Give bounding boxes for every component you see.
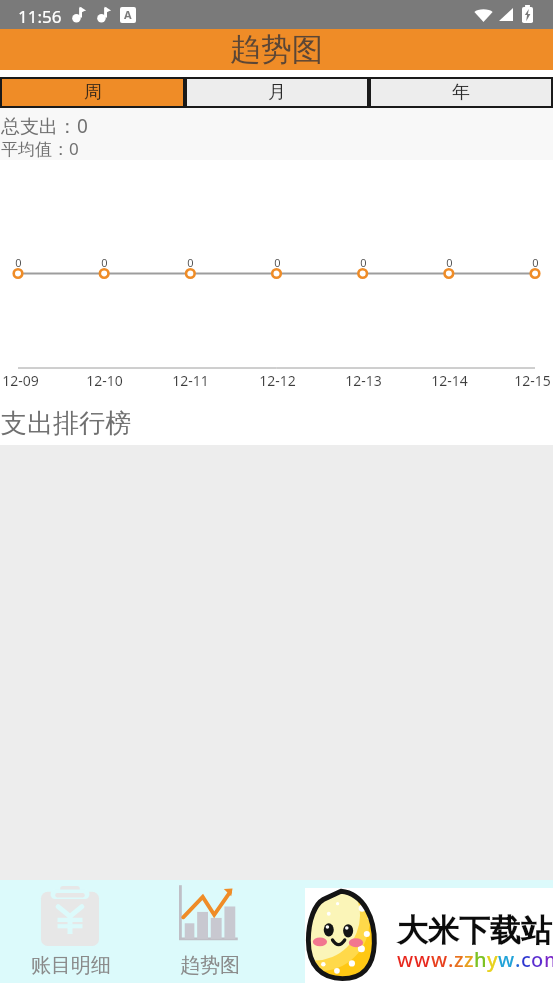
other: Battery [522,5,533,23]
staticText: 0 [446,255,453,270]
staticText: 12-10 [86,371,123,390]
staticText: w [431,946,448,973]
staticText: 平均值：0 [1,137,79,160]
staticText: . [448,946,454,973]
staticText: A [124,7,132,22]
button[interactable]: 周 [0,77,185,108]
other: 账目明细 [41,886,99,946]
button[interactable]: 年 [369,77,553,108]
staticText: c [521,946,531,973]
staticText: 总支出：0 [1,113,88,139]
staticText: 12-15 [514,371,551,390]
staticText: 支出排行榜 [1,407,131,440]
staticText: 0 [187,255,194,270]
other: WiFi [474,7,493,22]
staticText: 12-13 [345,371,382,390]
button[interactable]: 账目明细 [0,880,142,983]
staticText: 12-09 [2,371,39,390]
staticText: 0 [360,255,367,270]
staticText: m [544,946,553,973]
staticText: 趋势图 [230,30,323,69]
staticText: 12-12 [259,371,296,390]
staticText: 0 [15,255,22,270]
staticText: y [487,946,498,973]
button[interactable]: 趋势图 [142,880,277,983]
staticText: 趋势图 [180,953,240,978]
staticText: w [414,946,431,973]
staticText: h [474,946,487,973]
other: Signal [499,8,513,21]
staticText: 账目明细 [31,953,111,978]
button[interactable]: 月 [185,77,369,108]
other: 趋势图 [177,884,239,944]
staticText: 11:56 [18,5,62,28]
staticText: 周 [84,81,102,104]
staticText: z [464,946,474,973]
staticText: z [454,946,464,973]
staticText: 12-14 [431,371,468,390]
staticText: o [531,946,544,973]
staticText: 0 [101,255,108,270]
staticText: w [498,946,515,973]
staticText: w [397,946,414,973]
staticText: 12-11 [172,371,209,390]
staticText: 月 [268,81,286,104]
staticText: 0 [532,255,539,270]
staticText: 0 [274,255,281,270]
staticText: 年 [452,81,470,104]
staticText: 大米下载站 [397,911,552,950]
staticText: . [515,946,521,973]
